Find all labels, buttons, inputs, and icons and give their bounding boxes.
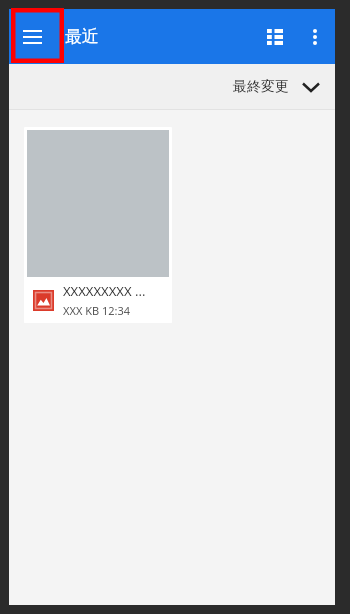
button[interactable]: Switch to list view (253, 15, 297, 59)
button[interactable]: Open navigation drawer (9, 14, 55, 60)
button[interactable]: 最終変更 (221, 72, 335, 102)
staticText: XXX KB 12:34 (63, 303, 131, 318)
button[interactable]: More options (297, 15, 333, 59)
staticText: 最終変更 (233, 78, 289, 96)
button[interactable]: XXXXXXXXX ... (24, 127, 172, 323)
staticText: XXXXXXXXX ... (63, 282, 146, 300)
staticText: 最近 (65, 26, 99, 47)
